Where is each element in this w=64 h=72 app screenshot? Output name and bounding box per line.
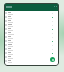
button[interactable] xyxy=(4,47,59,51)
button[interactable] xyxy=(4,15,59,19)
button[interactable] xyxy=(4,59,59,63)
button[interactable] xyxy=(4,19,59,23)
button[interactable] xyxy=(4,39,59,43)
button[interactable] xyxy=(4,11,59,15)
button[interactable] xyxy=(4,43,59,47)
button[interactable] xyxy=(4,35,59,39)
button[interactable] xyxy=(4,31,59,35)
button[interactable] xyxy=(4,51,59,55)
button[interactable] xyxy=(4,23,59,27)
button[interactable] xyxy=(4,55,59,59)
button[interactable] xyxy=(4,27,59,31)
button[interactable]: New chat xyxy=(50,57,55,62)
